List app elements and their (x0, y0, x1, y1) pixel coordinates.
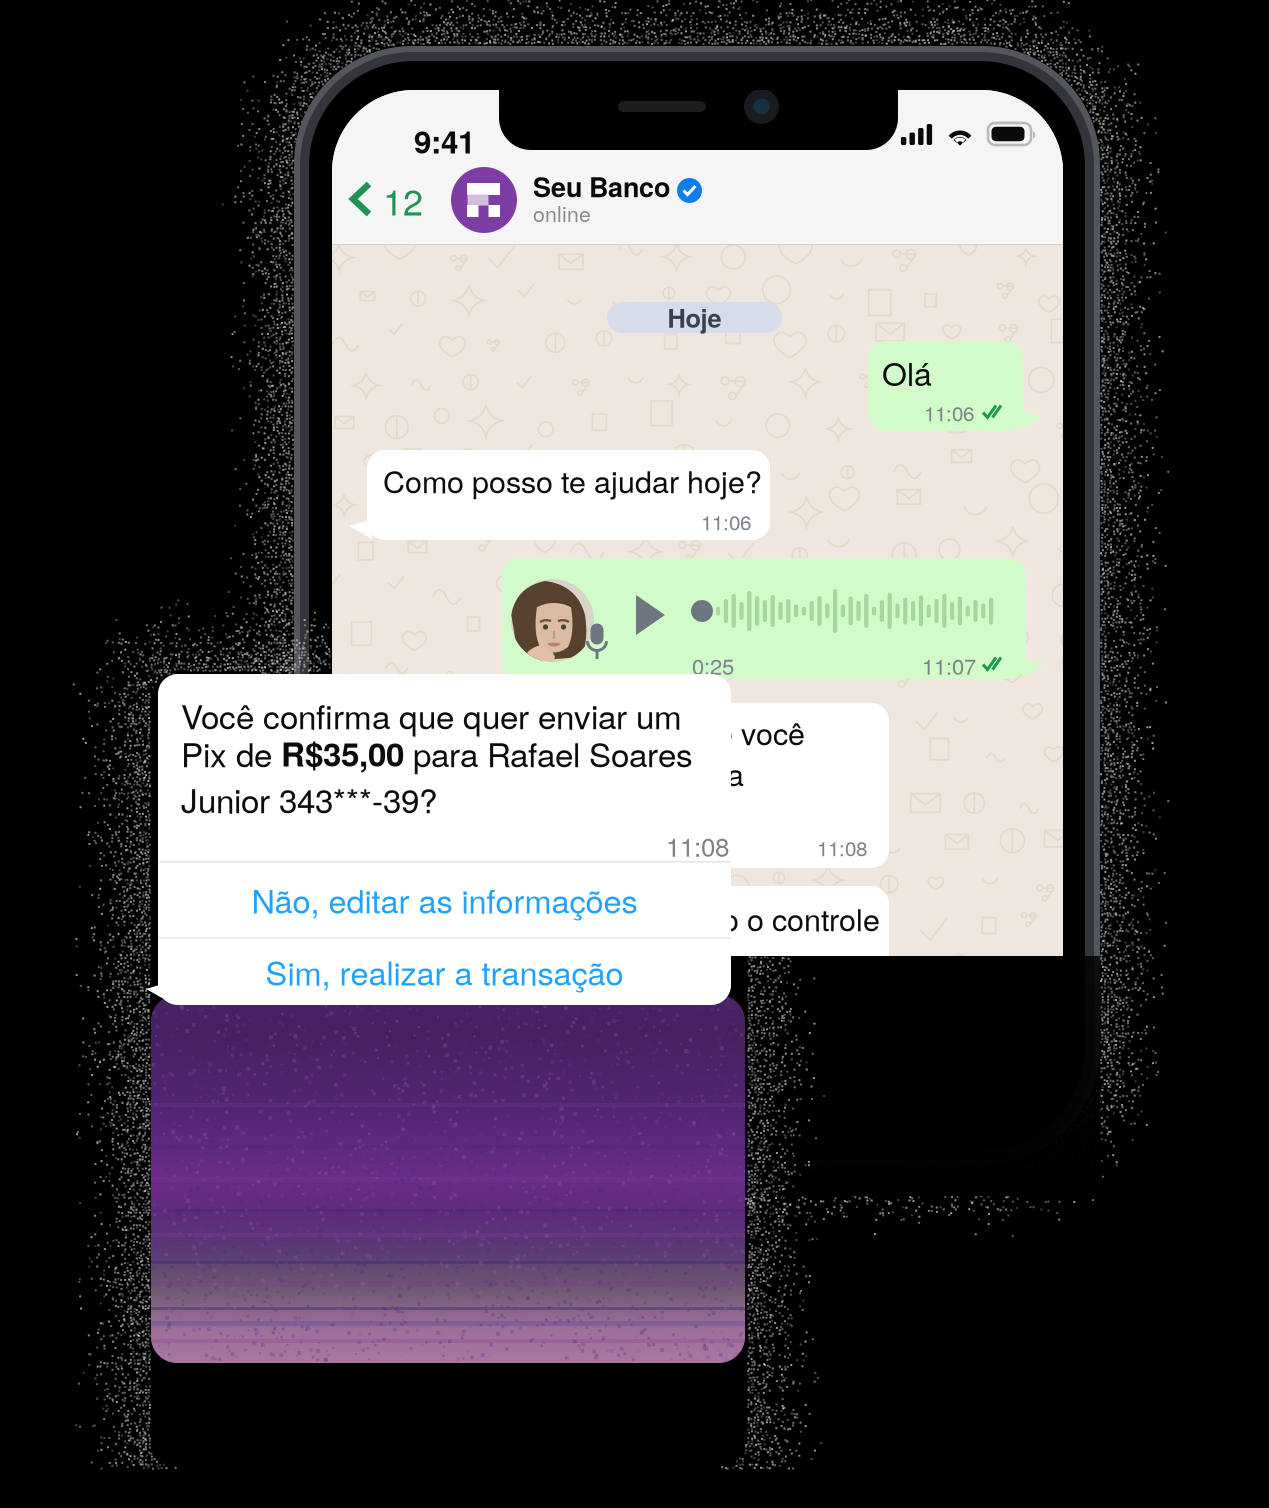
staticText: online (533, 197, 591, 228)
staticText: R$35,00 (281, 729, 404, 777)
staticText: Junior 343***-39? (181, 775, 437, 823)
staticText: Você confirma que quer enviar um (181, 691, 682, 739)
staticText: 0:25 (692, 649, 734, 681)
staticText: 11:06 (924, 398, 974, 427)
staticText: para Rafael Soares (404, 729, 693, 777)
button[interactable]: Seu Banco (450, 162, 920, 238)
staticText: Hoje (667, 299, 721, 336)
staticText: Sim, realizar a transação (265, 948, 623, 995)
staticText: 11:08 (817, 833, 867, 862)
staticText: Não, editar as informações (251, 876, 637, 923)
staticText: 11:07 (922, 649, 976, 681)
staticText: Tudo bem! Confirma que você (401, 710, 805, 754)
button[interactable]: Não, editar as informações (158, 862, 731, 937)
staticText: Pode deixar que eu faço o controle (411, 896, 880, 940)
staticText: quer enviar R$35,00 para (401, 751, 744, 795)
staticText: 12 (383, 174, 423, 226)
button[interactable]: 12 (340, 164, 452, 236)
staticText: Olá (882, 349, 932, 395)
staticText: Como posso te ajudar hoje? (383, 458, 762, 502)
staticText: esse CPF mesmo? (401, 792, 658, 836)
staticText: Seu Banco (533, 167, 670, 205)
staticText: 9:41 (414, 118, 475, 163)
staticText: 11:08 (666, 827, 729, 864)
staticText: 11:06 (701, 507, 751, 536)
button[interactable]: Sim, realizar a transação (158, 938, 731, 1005)
staticText: Pix de (181, 729, 281, 777)
